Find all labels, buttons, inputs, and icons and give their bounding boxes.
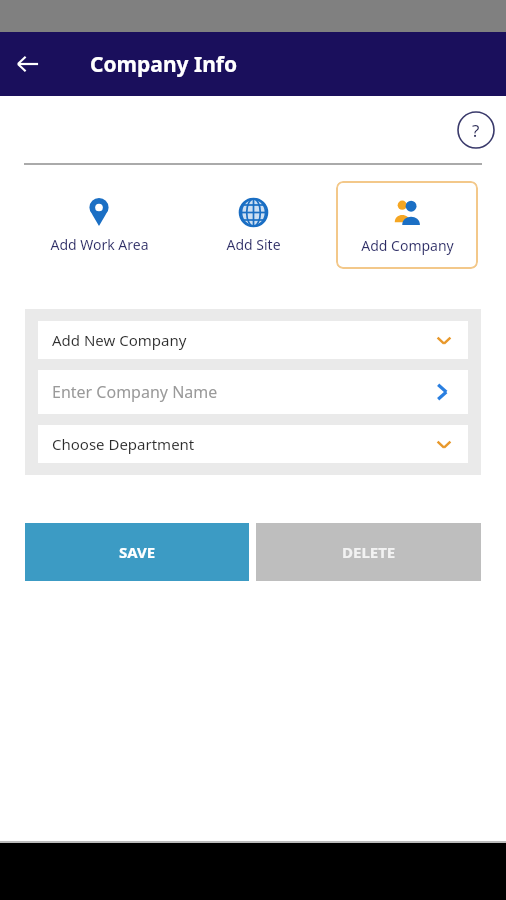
button[interactable]: Choose Department bbox=[38, 425, 468, 463]
button[interactable]: DELETE bbox=[256, 523, 481, 581]
staticText: DELETE bbox=[342, 542, 396, 562]
button[interactable]: Help bbox=[454, 108, 498, 152]
button[interactable]: Add New Company bbox=[38, 321, 468, 359]
button[interactable]: SAVE bbox=[25, 523, 249, 581]
staticText: Add Company bbox=[361, 236, 454, 255]
staticText: SAVE bbox=[119, 542, 156, 562]
button[interactable]: Add Work Area bbox=[28, 181, 170, 269]
button[interactable]: Back bbox=[0, 36, 56, 92]
staticText: Add Site bbox=[226, 235, 281, 254]
staticText: Company Info bbox=[90, 50, 238, 79]
staticText: Add Work Area bbox=[50, 235, 149, 254]
button[interactable]: Add Site bbox=[182, 181, 324, 269]
staticText: Add New Company bbox=[52, 330, 434, 350]
staticText: Choose Department bbox=[52, 434, 434, 454]
staticText: Enter Company Name bbox=[52, 381, 430, 403]
button[interactable]: Add Company bbox=[336, 181, 478, 269]
staticText: ? bbox=[472, 119, 480, 142]
button[interactable]: Enter Company Name bbox=[38, 370, 468, 414]
